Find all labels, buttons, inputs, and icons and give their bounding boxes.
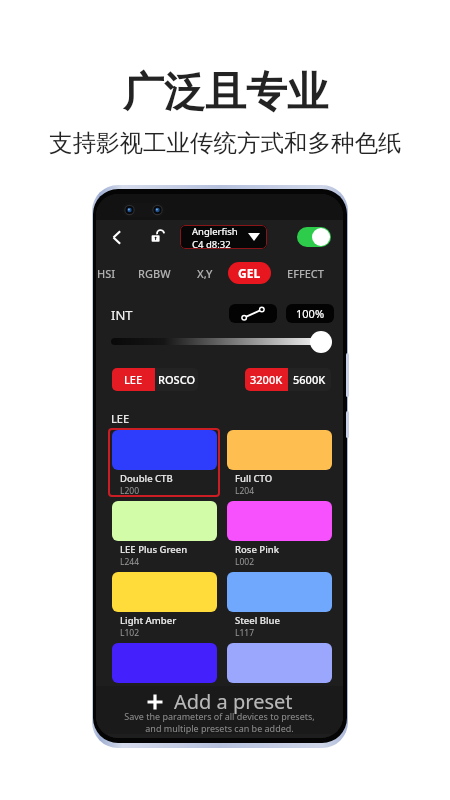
staticText: INT: [111, 306, 133, 324]
staticText: GEL: [238, 265, 261, 281]
button[interactable]: 5600K: [288, 368, 331, 391]
staticText: L002: [235, 556, 255, 568]
button[interactable]: Intensity slider: [310, 331, 332, 353]
staticText: Steel Blue: [235, 614, 280, 627]
button[interactable]: LEE Plus Green: [108, 497, 221, 566]
button[interactable]: Unlock: [147, 226, 169, 248]
staticText: X,Y: [197, 266, 213, 281]
staticText: Rose Pink: [235, 543, 279, 556]
button[interactable]: Anglerfish: [180, 225, 267, 249]
button[interactable]: RGBW: [129, 254, 179, 292]
button[interactable]: Full CTO: [223, 426, 336, 495]
staticText: ROSCO: [158, 372, 196, 387]
button[interactable]: 3200K: [245, 368, 288, 391]
button[interactable]: Double CTB: [108, 426, 221, 495]
staticText: Save the parameters of all devices to pr…: [124, 710, 315, 722]
button[interactable]: 100%: [286, 304, 334, 323]
button[interactable]: Rose Pink: [223, 497, 336, 566]
staticText: Double CTB: [120, 472, 173, 485]
staticText: L204: [235, 485, 255, 497]
staticText: 3200K: [250, 372, 283, 387]
button[interactable]: LEE: [112, 368, 155, 391]
staticText: Full CTO: [235, 472, 273, 485]
staticText: 广泛且专业: [123, 67, 328, 119]
button[interactable]: Curve editor: [229, 304, 277, 323]
staticText: L200: [120, 485, 140, 497]
staticText: LEE: [124, 372, 143, 387]
staticText: Anglerfish: [192, 225, 238, 238]
button[interactable]: ROSCO: [155, 368, 198, 391]
staticText: 5600K: [293, 372, 326, 387]
staticText: L102: [120, 627, 140, 639]
staticText: 支持影视工业传统方式和多种色纸: [49, 128, 402, 158]
staticText: L244: [120, 556, 140, 568]
button[interactable]: X,Y: [180, 254, 230, 292]
staticText: RGBW: [138, 266, 171, 281]
button[interactable]: Add a preset: [96, 686, 343, 734]
button[interactable]: HSI: [96, 254, 131, 292]
staticText: and multiple presets can be added.: [145, 722, 294, 734]
button[interactable]: Light Amber: [108, 568, 221, 637]
staticText: C4 d8:32: [192, 238, 231, 249]
staticText: LEE: [111, 411, 130, 426]
button[interactable]: [223, 639, 336, 708]
staticText: 100%: [296, 306, 325, 321]
button[interactable]: GEL: [224, 254, 274, 292]
button[interactable]: EFFECT: [281, 254, 331, 292]
button[interactable]: Back: [105, 226, 127, 248]
button[interactable]: Steel Blue: [223, 568, 336, 637]
button[interactable]: [108, 639, 221, 708]
button[interactable]: Power toggle: [297, 227, 331, 247]
staticText: Light Amber: [120, 614, 177, 627]
staticText: L117: [235, 627, 255, 639]
staticText: Add a preset: [174, 688, 293, 715]
staticText: EFFECT: [287, 266, 325, 281]
staticText: LEE Plus Green: [120, 543, 188, 556]
staticText: HSI: [97, 266, 116, 281]
